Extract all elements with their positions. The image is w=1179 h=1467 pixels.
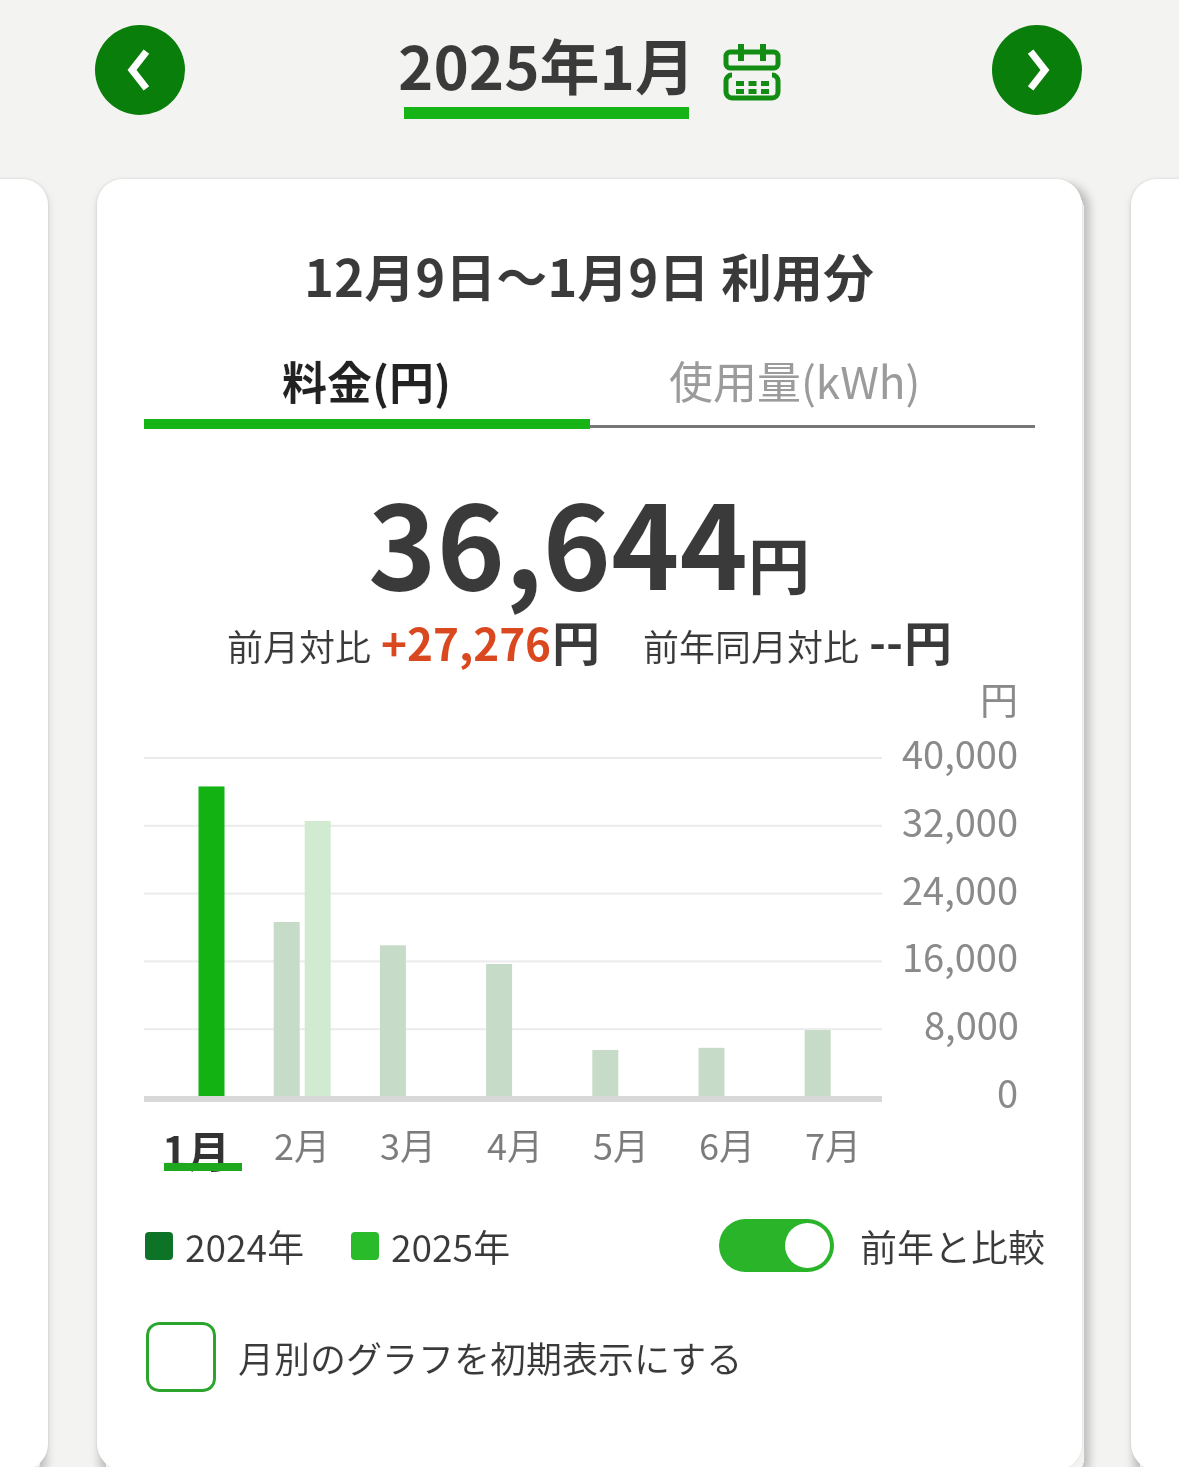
staticText: 36,644 [368, 455, 748, 623]
button[interactable]: 月別のグラフを初期表示にする [146, 1322, 743, 1392]
button[interactable]: 7月 [780, 1118, 886, 1170]
staticText: -- [869, 607, 904, 674]
button[interactable] [95, 25, 185, 115]
staticText: 2024年 [185, 1219, 305, 1273]
staticText: 4月 [487, 1118, 543, 1170]
button[interactable] [719, 1219, 834, 1272]
staticText: 使用量(kWh) [669, 348, 921, 412]
staticText: 24,000 [902, 861, 1019, 916]
staticText: 12月9日〜1月9日 利用分 [304, 238, 875, 312]
button[interactable]: 3月 [355, 1118, 461, 1170]
staticText: 2025年1月 [398, 20, 695, 107]
staticText: 1月 [162, 1118, 231, 1180]
staticText: 前年同月対比 [643, 619, 860, 671]
staticText: 円 [980, 670, 1019, 725]
button[interactable]: 1月 [143, 1118, 249, 1180]
staticText: 32,000 [902, 793, 1019, 848]
staticText: 40,000 [902, 725, 1019, 780]
staticText: 0 [997, 1064, 1019, 1119]
staticText: 8,000 [924, 996, 1019, 1051]
staticText: 16,000 [902, 928, 1019, 983]
staticText: +27,276 [381, 610, 552, 674]
staticText: 料金(円) [282, 348, 452, 413]
button[interactable]: 使用量(kWh) [572, 340, 1017, 420]
staticText: 月別のグラフを初期表示にする [238, 1331, 743, 1383]
button[interactable]: 4月 [462, 1118, 568, 1170]
staticText: 円 [904, 605, 953, 675]
staticText: 前年と比較 [860, 1219, 1045, 1273]
button[interactable]: 5月 [568, 1118, 674, 1170]
staticText: 前月対比 [227, 619, 372, 671]
button[interactable] [992, 25, 1082, 115]
staticText: 7月 [805, 1118, 861, 1170]
button[interactable]: 2月 [249, 1118, 355, 1170]
staticText: 3月 [380, 1118, 436, 1170]
staticText: 2月 [274, 1118, 330, 1170]
button[interactable]: 料金(円) [144, 340, 590, 420]
staticText: 2025年 [391, 1219, 511, 1273]
staticText: 6月 [699, 1118, 755, 1170]
button[interactable]: 6月 [674, 1118, 780, 1170]
staticText: 円 [552, 605, 601, 675]
button[interactable]: 2025年1月 [398, 20, 781, 119]
staticText: 5月 [593, 1118, 649, 1170]
staticText: 円 [748, 518, 811, 608]
